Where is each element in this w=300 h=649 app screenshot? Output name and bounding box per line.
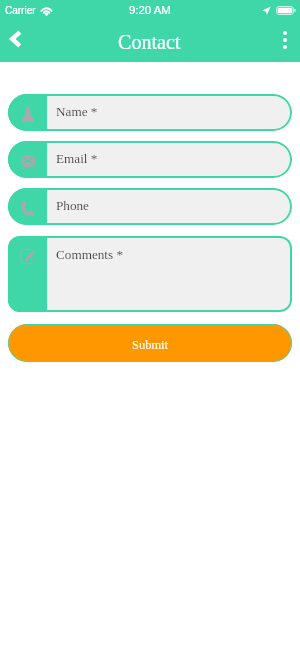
button[interactable]: Email * [8,141,292,178]
button[interactable]: Submit [8,324,292,362]
staticText: Contact [118,31,181,53]
staticText: 9:20 AM [129,4,171,17]
staticText: Phone [56,198,89,213]
button[interactable]: More options [269,20,300,62]
staticText: Comments * [56,247,124,262]
button[interactable]: Phone [8,188,292,225]
button[interactable]: Back [0,20,32,62]
button[interactable]: Name * [8,94,292,131]
staticText: Submit [132,338,168,352]
staticText: Name * [56,104,98,119]
staticText: Carrier [5,5,36,16]
staticText: Email * [56,151,98,166]
button[interactable]: Comments * [8,236,292,312]
